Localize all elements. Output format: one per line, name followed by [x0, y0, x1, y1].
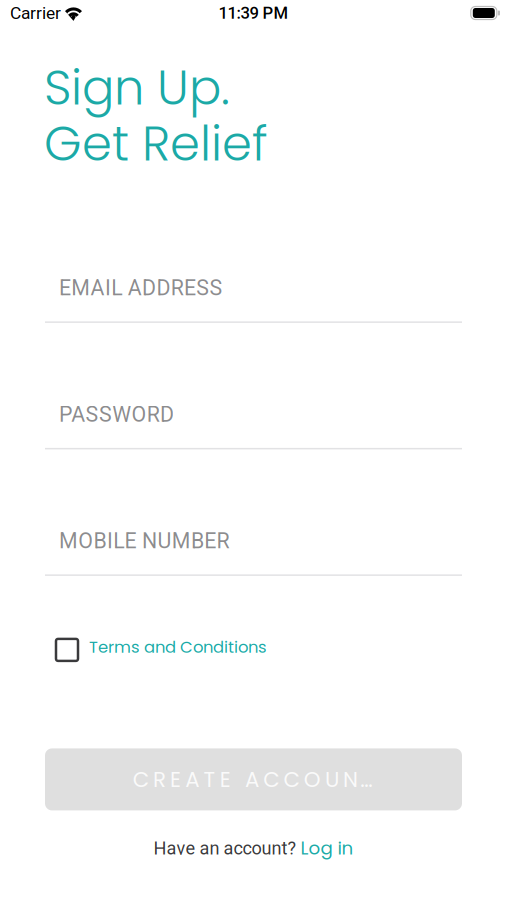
staticText: Sign Up. [44, 54, 230, 121]
staticText: Log in [300, 835, 353, 861]
button[interactable]: CREATE ACCOUNT [45, 748, 462, 810]
staticText: Get Relief [44, 110, 268, 177]
staticText: 11:39 PM [218, 3, 288, 23]
button[interactable]: Terms and Conditions [56, 638, 451, 664]
staticText: Have an account? [153, 838, 300, 859]
button[interactable]: Log in [300, 835, 353, 861]
staticText: MOBILE NUMBER [59, 528, 230, 553]
staticText: CREATE ACCOUNT [133, 764, 374, 794]
staticText: EMAIL ADDRESS [59, 275, 223, 300]
staticText: PASSWORD [59, 402, 174, 427]
staticText: Carrier [10, 3, 61, 23]
staticText: Terms and Conditions [89, 635, 267, 658]
